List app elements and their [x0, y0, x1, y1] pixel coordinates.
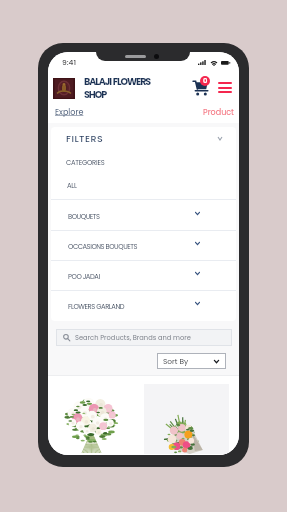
staticText: FLOWERS GARLAND	[68, 302, 125, 312]
button[interactable]: Menu	[218, 82, 232, 93]
button[interactable]: BOUQUETS	[51, 202, 236, 231]
staticText: FILTERS	[66, 132, 104, 145]
button[interactable]: Shopping cart	[192, 78, 209, 96]
button[interactable]	[48, 376, 144, 455]
button[interactable]: FLOWERS GARLAND	[51, 292, 236, 321]
staticText: POO JADAI	[68, 272, 100, 282]
staticText: BALAJI FLOWERS	[84, 75, 151, 88]
staticText: 0	[203, 76, 208, 86]
button[interactable]: Sort By	[157, 353, 226, 369]
staticText: 9:41	[62, 57, 77, 67]
staticText: SHOP	[84, 88, 107, 101]
button[interactable]: POO JADAI	[51, 262, 236, 291]
staticText: ALL	[67, 181, 77, 191]
staticText: Sort By	[163, 356, 189, 366]
staticText: CATEGORIES	[66, 158, 105, 168]
button[interactable]	[144, 376, 229, 455]
staticText: Explore	[55, 107, 84, 118]
button[interactable]: OCCASIONS BOUQUETS	[51, 232, 236, 261]
staticText: BOUQUETS	[68, 212, 100, 222]
button[interactable]: Search Products, Brands and more	[56, 329, 232, 346]
staticText: Search Products, Brands and more	[75, 333, 191, 342]
staticText: OCCASIONS BOUQUETS	[68, 242, 138, 252]
button[interactable]: Product	[203, 107, 235, 118]
button[interactable]: Explore	[55, 107, 84, 118]
staticText: Product	[203, 107, 235, 118]
